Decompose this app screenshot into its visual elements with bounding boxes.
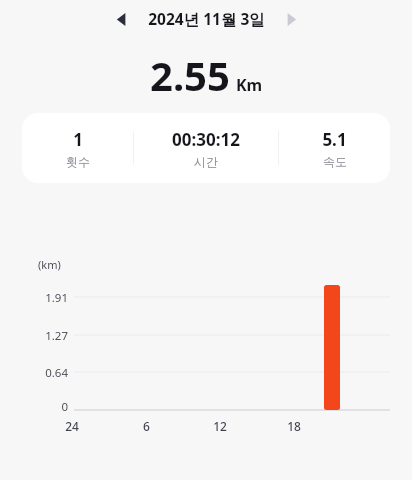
staticText: 0.64 [45,365,68,381]
button[interactable]: Next day [277,5,305,33]
staticText: 2.55 [150,48,230,102]
staticText: 시간 [194,154,218,169]
staticText: 2024년 11월 3일 [148,8,265,29]
staticText: 6 [143,418,150,434]
staticText: Km [236,74,263,96]
staticText: 00:30:12 [172,128,240,151]
staticText: 12 [213,418,227,434]
staticText: 0 [61,399,68,415]
staticText: 18 [287,418,301,434]
staticText: (km) [38,257,61,272]
staticText: 5.1 [322,128,347,151]
staticText: 횟수 [66,154,90,169]
staticText: 1 [73,128,83,151]
staticText: 1.27 [45,328,68,344]
staticText: 1.91 [45,290,68,306]
button[interactable]: Previous day [107,5,135,33]
button[interactable]: 1 [22,113,390,183]
staticText: 24 [65,418,79,434]
staticText: 속도 [323,154,347,169]
